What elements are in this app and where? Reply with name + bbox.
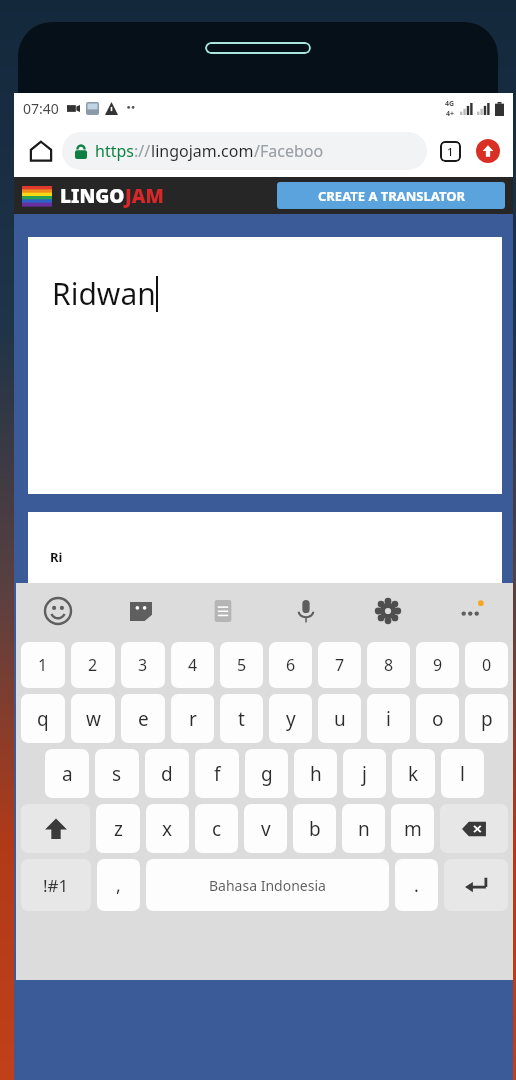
button[interactable]: Emoji (38, 591, 78, 631)
button[interactable]: Bahasa Indonesia (146, 859, 389, 911)
button[interactable]: 4 (171, 642, 214, 688)
button[interactable]: Settings (368, 591, 408, 631)
button[interactable]: n (342, 804, 385, 853)
staticText: !#1 (43, 874, 69, 897)
staticText: Ridwan (52, 273, 156, 314)
button[interactable]: ᴿⁱ (28, 512, 502, 712)
staticText: 2 (88, 654, 98, 676)
staticText: 3 (138, 654, 148, 676)
button[interactable]: Update (471, 134, 505, 168)
staticText: t (238, 706, 245, 732)
staticText: 9 (433, 654, 443, 676)
staticText: g (261, 761, 273, 787)
staticText: c (212, 816, 222, 842)
button[interactable]: !#1 (21, 859, 91, 911)
button[interactable]: 7 (318, 642, 361, 688)
button[interactable]: r (171, 694, 214, 743)
staticText: i (386, 706, 391, 732)
staticText: x (162, 816, 173, 842)
button[interactable]: Shift (21, 804, 90, 853)
button[interactable]: Ridwan (28, 237, 502, 494)
staticText: 6 (286, 654, 296, 676)
button[interactable]: i (367, 694, 410, 743)
button[interactable]: a (45, 749, 89, 798)
staticText: n (358, 816, 370, 842)
staticText: w (86, 706, 101, 732)
button[interactable]: b (293, 804, 336, 853)
button[interactable]: o (416, 694, 459, 743)
button[interactable]: e (121, 694, 165, 743)
button[interactable]: Clipboard (203, 591, 243, 631)
staticText: f (214, 761, 221, 787)
button[interactable]: 8 (367, 642, 410, 688)
button[interactable]: m (391, 804, 434, 853)
button[interactable]: g (245, 749, 288, 798)
button[interactable]: f (195, 749, 239, 798)
button[interactable]: 6 (269, 642, 312, 688)
staticText: b (309, 816, 321, 842)
staticText: . (414, 873, 419, 898)
staticText: a (62, 761, 73, 787)
button[interactable]: , (97, 859, 140, 911)
button[interactable]: q (21, 694, 65, 743)
button[interactable]: Home (22, 132, 60, 170)
staticText: u (334, 706, 346, 732)
staticText: d (161, 761, 173, 787)
staticText: lingojam.com (151, 140, 254, 162)
staticText: 0 (482, 654, 492, 676)
button[interactable]: y (269, 694, 312, 743)
staticText: https (95, 140, 134, 162)
button[interactable]: https (62, 132, 427, 170)
button[interactable]: 2 (71, 642, 115, 688)
button[interactable]: 5 (220, 642, 263, 688)
button[interactable]: k (392, 749, 435, 798)
button[interactable]: u (318, 694, 361, 743)
staticText: ᴿⁱ (50, 547, 63, 574)
staticText: 4+ (446, 109, 455, 119)
staticText: 1 (38, 654, 48, 676)
button[interactable]: c (195, 804, 238, 853)
button[interactable]: More options (451, 591, 491, 631)
staticText: 1 (447, 144, 454, 159)
staticText: , (116, 873, 121, 898)
button[interactable]: 9 (416, 642, 459, 688)
staticText: l (460, 761, 465, 787)
button[interactable]: t (220, 694, 263, 743)
button[interactable]: Stickers (121, 591, 161, 631)
staticText: j (362, 761, 367, 787)
button[interactable]: d (145, 749, 189, 798)
staticText: z (114, 816, 123, 842)
staticText: m (404, 816, 422, 842)
button[interactable]: Enter (444, 859, 508, 911)
staticText: JAM (125, 183, 164, 209)
button[interactable]: j (343, 749, 386, 798)
button[interactable]: w (71, 694, 115, 743)
staticText: h (310, 761, 322, 787)
button[interactable]: 3 (121, 642, 165, 688)
staticText: LINGO (60, 183, 125, 209)
button[interactable]: h (294, 749, 337, 798)
button[interactable]: CREATE A TRANSLATOR (277, 182, 505, 209)
staticText: q (37, 706, 49, 732)
staticText: v (261, 816, 271, 842)
staticText: 4G (445, 99, 455, 109)
button[interactable]: x (146, 804, 189, 853)
button[interactable]: Tabs (433, 134, 467, 168)
staticText: k (408, 761, 419, 787)
staticText: CREATE A TRANSLATOR (318, 187, 465, 205)
button[interactable]: Backspace (440, 804, 508, 853)
button[interactable]: z (96, 804, 140, 853)
staticText: /Faceboo (254, 140, 324, 162)
staticText: s (112, 761, 122, 787)
button[interactable]: 0 (465, 642, 508, 688)
button[interactable]: v (244, 804, 287, 853)
button[interactable]: s (95, 749, 139, 798)
staticText: y (286, 706, 296, 732)
button[interactable]: p (465, 694, 508, 743)
button[interactable]: . (395, 859, 438, 911)
button[interactable]: l (441, 749, 484, 798)
button[interactable]: 1 (21, 642, 65, 688)
button[interactable]: Voice input (286, 591, 326, 631)
staticText: r (189, 706, 197, 732)
staticText: 4 (188, 654, 198, 676)
